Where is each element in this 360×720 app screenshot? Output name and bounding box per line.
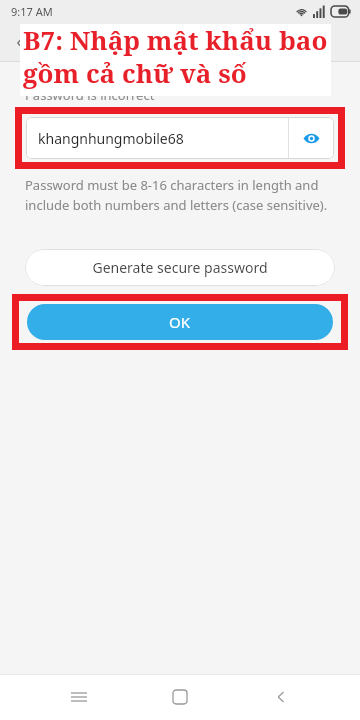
staticText: 9:17 AM: [11, 4, 53, 19]
staticText: include both numbers and letters (case s…: [25, 196, 328, 214]
button[interactable]: Show password: [289, 117, 334, 159]
staticText: B7: Nhập mật khẩu bao: [23, 22, 328, 57]
button[interactable]: OK: [27, 304, 333, 340]
staticText: OK: [169, 312, 191, 332]
staticText: gồm cả chữ và số: [23, 55, 247, 90]
button[interactable]: khangnhungmobile68: [26, 117, 334, 159]
button[interactable]: Home: [158, 675, 202, 719]
staticText: Password must be 8-16 characters in leng…: [25, 176, 319, 194]
staticText: khangnhungmobile68: [38, 129, 288, 148]
button[interactable]: Back: [259, 675, 303, 719]
button[interactable]: Generate secure password: [25, 249, 335, 286]
staticText: Generate secure password: [92, 258, 268, 277]
button[interactable]: Back: [9, 32, 31, 54]
button[interactable]: Menu: [57, 675, 101, 719]
staticText: Password is incorrect: [25, 86, 155, 104]
